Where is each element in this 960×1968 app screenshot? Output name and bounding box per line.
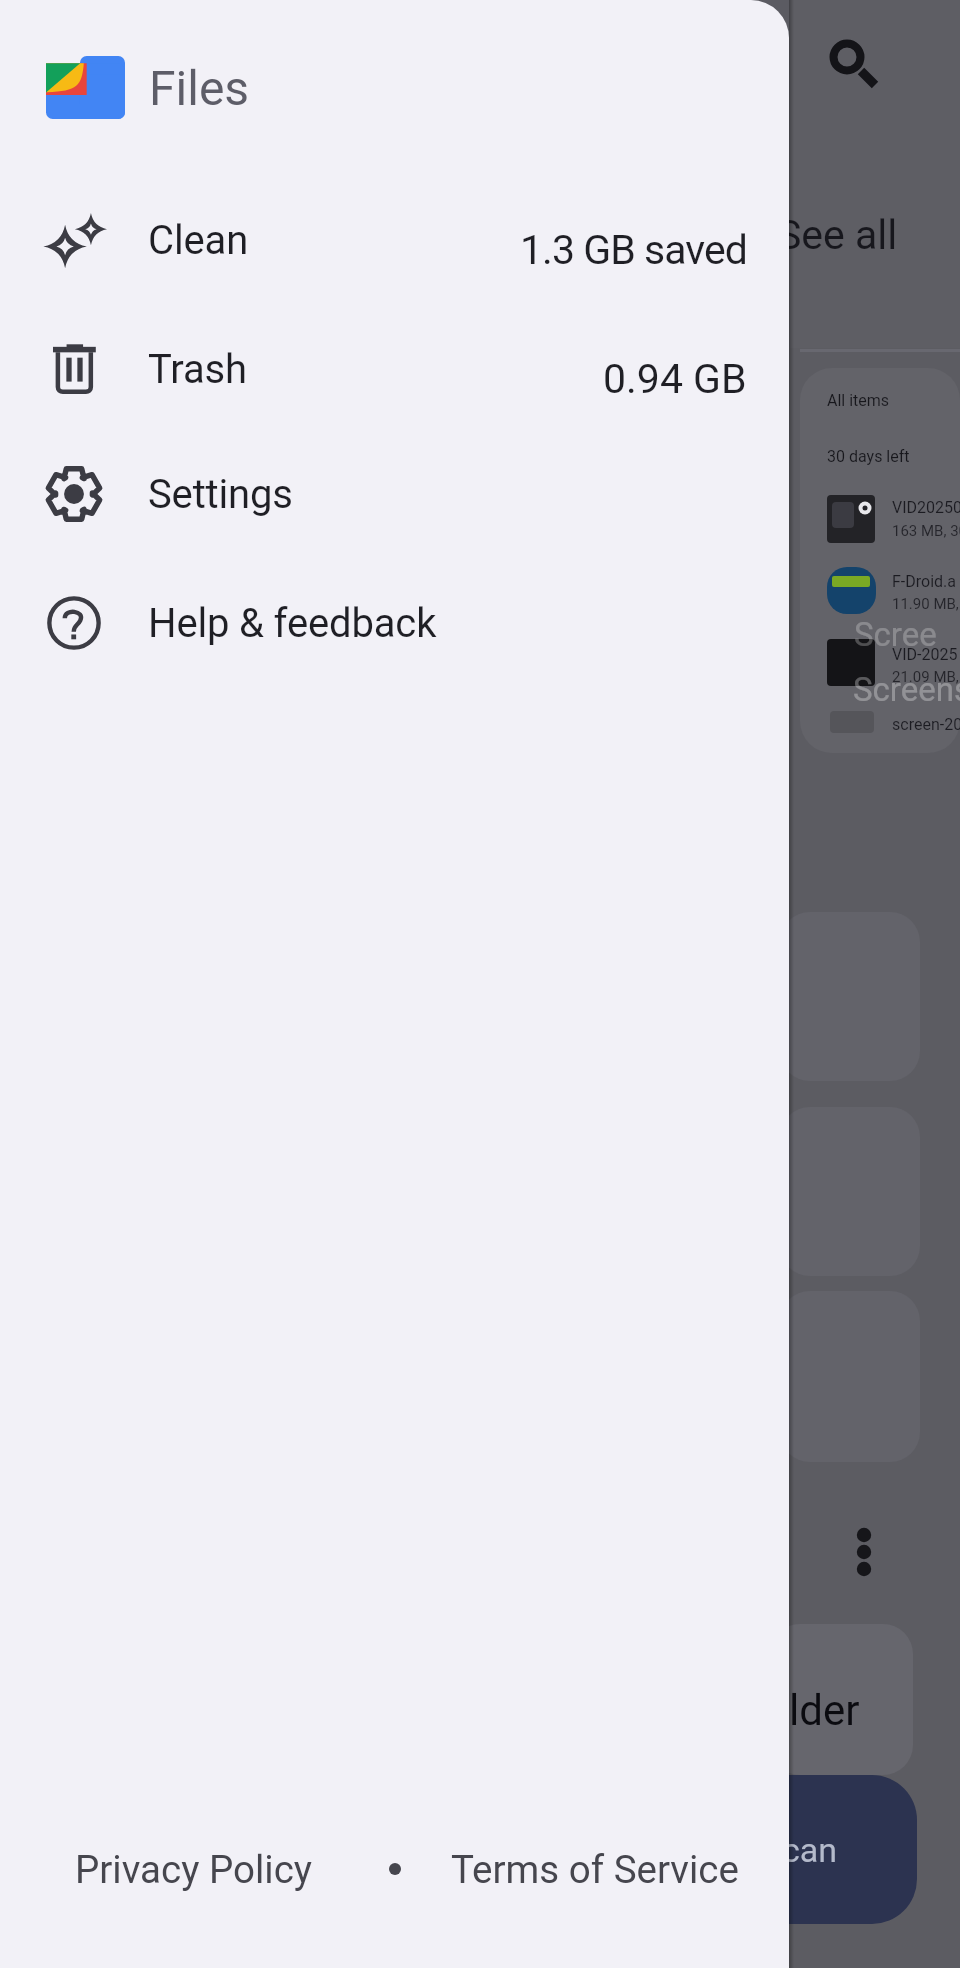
staticText: All items bbox=[827, 391, 890, 410]
other: Help and feedback bbox=[46, 595, 102, 651]
button[interactable]: Help and feedback bbox=[0, 590, 789, 656]
staticText: Screens bbox=[853, 670, 960, 709]
other: Settings bbox=[42, 462, 106, 526]
staticText: Files bbox=[149, 60, 250, 116]
button[interactable]: Settings bbox=[0, 461, 789, 527]
staticText: Scree bbox=[854, 615, 937, 654]
staticText: 1.3 GB saved bbox=[520, 226, 747, 274]
button[interactable]: Trash bbox=[0, 336, 789, 402]
staticText: 21.09 MB, bbox=[892, 668, 959, 686]
staticText: F-Droid.a bbox=[892, 572, 956, 591]
staticText: 30 days left bbox=[827, 447, 910, 466]
button[interactable]: Privacy Policy bbox=[75, 1847, 313, 1892]
staticText: 11.90 MB, 3 bbox=[892, 595, 960, 613]
staticText: 163 MB, 30 bbox=[892, 522, 960, 540]
staticText: Help & feedback bbox=[148, 600, 437, 647]
staticText: Clean bbox=[148, 217, 249, 264]
button[interactable]: Files bbox=[0, 47, 789, 127]
button[interactable]: Terms of Service bbox=[451, 1847, 739, 1892]
other: Trash bbox=[47, 342, 102, 397]
staticText: Trash bbox=[148, 346, 247, 393]
staticText: Settings bbox=[148, 471, 293, 518]
staticText: can bbox=[782, 1830, 838, 1870]
staticText: 0.94 GB bbox=[603, 355, 747, 403]
staticText: VID20250 bbox=[892, 498, 960, 517]
button[interactable]: Clean bbox=[0, 207, 789, 273]
staticText: screen-20 bbox=[892, 715, 960, 734]
other: Clean bbox=[44, 209, 107, 272]
staticText: See all bbox=[777, 211, 898, 259]
staticText: lder bbox=[789, 1686, 860, 1735]
other: Files bbox=[46, 56, 125, 119]
staticText: VID-2025 bbox=[892, 645, 958, 664]
